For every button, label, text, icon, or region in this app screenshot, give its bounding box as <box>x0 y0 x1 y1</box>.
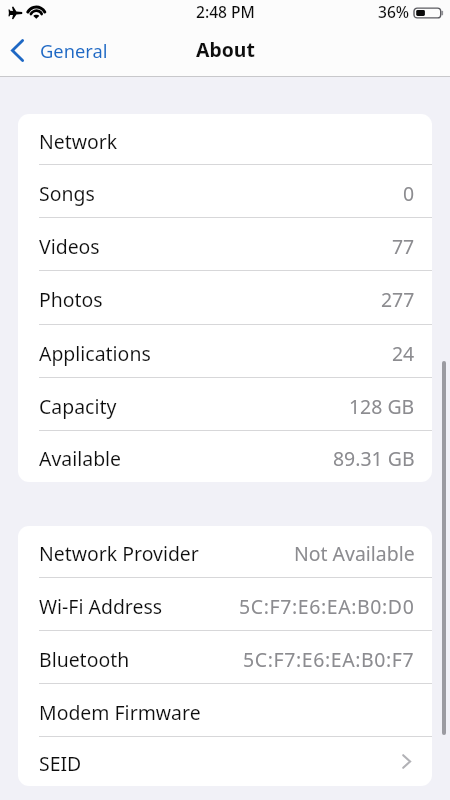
staticText: 5C:F7:E6:EA:B0:D0 <box>239 593 415 619</box>
staticText: Network Provider <box>39 540 199 566</box>
staticText: Photos <box>39 286 103 312</box>
staticText: Videos <box>39 233 100 259</box>
button[interactable]: Videos <box>18 218 432 271</box>
staticText: Applications <box>39 340 151 366</box>
staticText: 0 <box>403 180 415 206</box>
button[interactable]: Network Provider <box>18 526 432 578</box>
button[interactable]: Modem Firmware <box>18 684 432 737</box>
staticText: About <box>196 36 255 62</box>
staticText: 77 <box>392 233 415 259</box>
staticText: Wi-Fi Address <box>39 593 163 619</box>
button[interactable]: Photos <box>18 271 432 325</box>
button[interactable]: Back to General <box>0 32 118 69</box>
staticText: 24 <box>392 340 415 366</box>
staticText: 277 <box>381 286 415 312</box>
button[interactable]: Capacity <box>18 378 432 431</box>
staticText: Songs <box>39 180 95 206</box>
staticText: General <box>40 38 108 63</box>
staticText: Network <box>39 128 118 154</box>
button[interactable]: Wi-Fi Address <box>18 578 432 631</box>
staticText: Available <box>39 445 122 471</box>
staticText: 89.31 GB <box>333 445 415 471</box>
button[interactable]: SEID <box>18 737 432 786</box>
staticText: Modem Firmware <box>39 699 201 725</box>
button[interactable]: Songs <box>18 165 432 218</box>
staticText: 128 GB <box>349 393 415 419</box>
staticText: 36% <box>378 1 410 22</box>
staticText: Not Available <box>294 540 415 566</box>
staticText: Bluetooth <box>39 646 130 672</box>
button[interactable]: Available <box>18 431 432 482</box>
button[interactable]: Applications <box>18 325 432 378</box>
button[interactable]: Bluetooth <box>18 631 432 684</box>
button[interactable]: Network <box>18 114 432 165</box>
staticText: SEID <box>39 750 82 776</box>
staticText: 5C:F7:E6:EA:B0:F7 <box>243 646 415 672</box>
staticText: 2:48 PM <box>196 1 255 22</box>
staticText: Capacity <box>39 393 117 419</box>
other: Open SEID details <box>402 754 415 769</box>
